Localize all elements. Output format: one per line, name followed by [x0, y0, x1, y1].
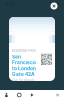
button[interactable]: Profile	[0, 90, 13, 100]
staticText: to London	[12, 65, 36, 71]
staticText: Tap for details	[12, 78, 35, 82]
staticText: BOARDING PASS	[12, 49, 36, 53]
button[interactable]: More	[51, 90, 64, 100]
button[interactable]: Close	[48, 0, 60, 12]
button[interactable]: Explore	[26, 90, 38, 100]
button[interactable]: Passes	[13, 90, 26, 100]
staticText: San Francisco	[12, 54, 36, 65]
staticText: Gate 42A	[12, 71, 35, 77]
